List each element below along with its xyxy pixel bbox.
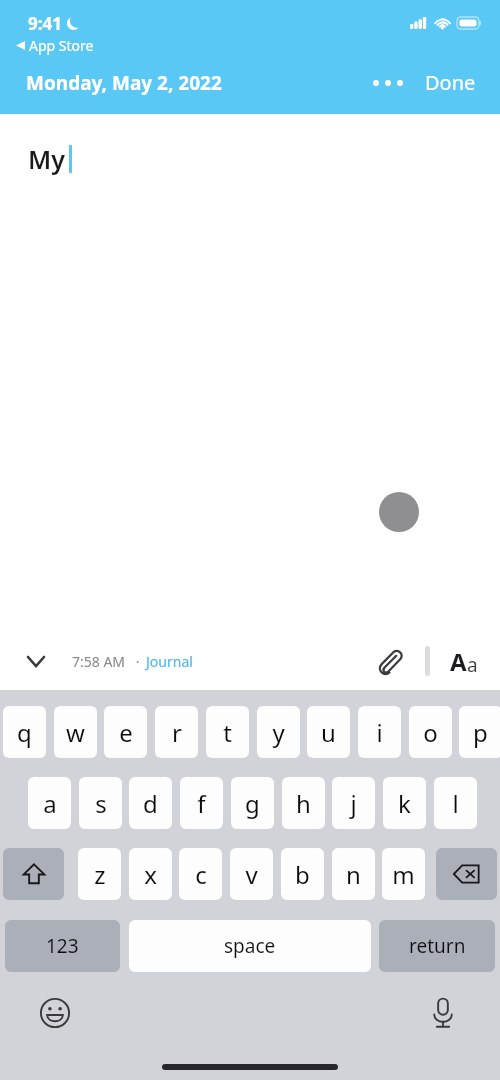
staticText: d (143, 787, 158, 820)
button[interactable]: f (180, 777, 223, 829)
button[interactable]: b (281, 848, 324, 900)
staticText: o (423, 716, 438, 749)
button[interactable]: Shift (3, 848, 64, 900)
staticText: return (409, 933, 466, 959)
button[interactable]: d (129, 777, 172, 829)
staticText: c (195, 858, 207, 891)
button[interactable]: q (3, 706, 46, 758)
staticText: b (295, 858, 310, 891)
staticText: A (450, 645, 467, 678)
button[interactable]: Format text (448, 641, 480, 682)
button[interactable]: space (129, 920, 371, 972)
staticText: r (172, 716, 182, 749)
button[interactable]: Dictation (420, 990, 466, 1036)
staticText: p (473, 716, 488, 749)
staticText: Journal (146, 652, 193, 671)
button[interactable]: z (78, 848, 121, 900)
staticText: j (350, 787, 357, 820)
staticText: e (119, 716, 133, 749)
button[interactable]: l (434, 777, 477, 829)
button[interactable]: s (79, 777, 122, 829)
button[interactable]: v (230, 848, 273, 900)
staticText: h (296, 787, 311, 820)
button[interactable]: n (332, 848, 375, 900)
staticText: l (452, 787, 459, 820)
button[interactable]: t (206, 706, 249, 758)
button[interactable]: Emoji (32, 990, 78, 1036)
staticText: z (94, 858, 106, 891)
staticText: 7:58 AM (72, 652, 126, 671)
staticText: · (132, 652, 144, 671)
button[interactable]: j (332, 777, 375, 829)
button[interactable]: r (155, 706, 198, 758)
staticText: a (467, 652, 478, 678)
staticText: y (272, 716, 285, 749)
button[interactable]: p (459, 706, 500, 758)
button[interactable]: k (383, 777, 426, 829)
button[interactable]: w (54, 706, 97, 758)
button[interactable]: Collapse (22, 651, 50, 672)
button[interactable]: My (0, 114, 500, 632)
button[interactable]: Attach (373, 644, 407, 678)
staticText: k (398, 787, 411, 820)
staticText: 123 (46, 933, 79, 959)
button[interactable]: Journal (146, 652, 193, 671)
staticText: Monday, May 2, 2022 (26, 70, 222, 96)
staticText: 9:41 (28, 12, 62, 35)
button[interactable]: Done (421, 63, 480, 102)
staticText: g (245, 787, 260, 820)
staticText: My (28, 142, 65, 176)
button[interactable]: u (307, 706, 350, 758)
button[interactable]: x (129, 848, 172, 900)
button[interactable]: return (379, 920, 495, 972)
staticText: t (223, 716, 232, 749)
button[interactable]: h (282, 777, 325, 829)
staticText: App Store (29, 36, 94, 55)
staticText: m (392, 858, 415, 891)
button[interactable]: Backspace (436, 848, 497, 900)
button[interactable]: More options (367, 72, 409, 94)
staticText: x (144, 858, 157, 891)
staticText: i (376, 716, 383, 749)
button[interactable]: c (179, 848, 222, 900)
staticText: s (95, 787, 107, 820)
button[interactable]: e (104, 706, 147, 758)
button[interactable]: o (409, 706, 452, 758)
staticText: f (197, 787, 206, 820)
button[interactable]: a (28, 777, 71, 829)
button[interactable]: 123 (5, 920, 120, 972)
button[interactable]: g (231, 777, 274, 829)
button[interactable]: App Store (14, 34, 96, 57)
staticText: q (17, 716, 32, 749)
staticText: v (245, 858, 258, 891)
staticText: space (224, 933, 276, 959)
button[interactable]: y (257, 706, 300, 758)
button[interactable]: m (382, 848, 425, 900)
button[interactable]: i (358, 706, 401, 758)
staticText: Done (425, 69, 476, 96)
staticText: u (321, 716, 336, 749)
staticText: w (66, 716, 85, 749)
staticText: n (346, 858, 361, 891)
staticText: a (43, 787, 57, 820)
